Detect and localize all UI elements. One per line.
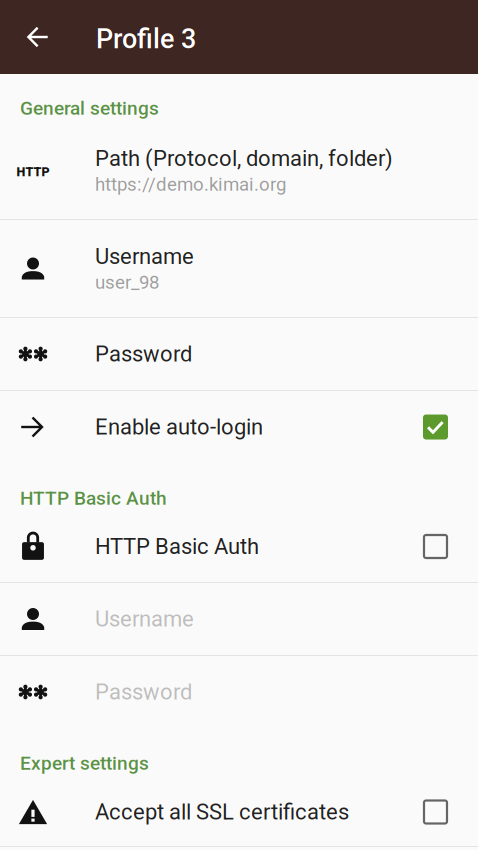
button[interactable]: Password: [0, 318, 478, 390]
button[interactable]: Password: [0, 656, 478, 728]
staticText: https://demo.kimai.org: [95, 173, 286, 195]
staticText: Path (Protocol, domain, folder): [95, 146, 393, 171]
staticText: Accept all SSL certificates: [95, 799, 349, 825]
staticText: Enable auto-login: [95, 414, 263, 440]
button[interactable]: Username: [0, 220, 478, 317]
staticText: Expert settings: [20, 752, 149, 774]
button[interactable]: Username: [0, 583, 478, 655]
button[interactable]: Enable auto-login: [0, 391, 478, 463]
staticText: user_98: [95, 271, 159, 293]
button[interactable]: HTTP: [0, 122, 478, 219]
staticText: Password: [95, 679, 192, 705]
staticText: Profile 3: [96, 23, 196, 55]
staticText: Password: [95, 341, 192, 367]
staticText: Username: [95, 244, 194, 269]
button[interactable]: Back: [14, 8, 62, 66]
button[interactable]: Accept all SSL certificates: [0, 778, 478, 846]
button[interactable]: HTTP Basic Auth: [0, 511, 478, 582]
staticText: General settings: [20, 97, 159, 119]
staticText: Username: [95, 606, 194, 632]
staticText: HTTP Basic Auth: [95, 534, 259, 559]
staticText: HTTP: [16, 165, 49, 179]
staticText: HTTP Basic Auth: [20, 487, 167, 509]
